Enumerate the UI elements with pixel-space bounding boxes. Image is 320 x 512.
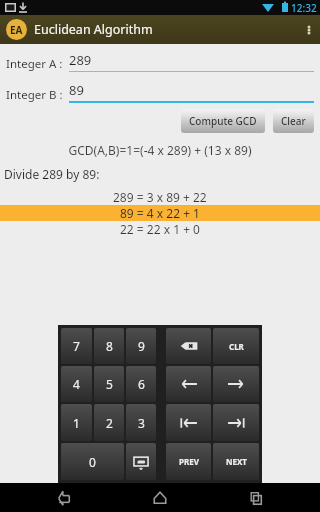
staticText: 289 = 3 x 89 + 22 bbox=[113, 189, 207, 205]
staticText: 89 bbox=[69, 81, 84, 99]
staticText: NEXT bbox=[226, 456, 247, 467]
button[interactable]: 8 bbox=[94, 328, 124, 364]
button[interactable]: More options bbox=[298, 15, 320, 44]
button[interactable]: 289 bbox=[69, 51, 314, 72]
button[interactable]: 2 bbox=[94, 404, 124, 441]
button[interactable]: Move left bbox=[166, 366, 211, 402]
button[interactable]: 3 bbox=[126, 404, 156, 441]
staticText: Divide 289 by 89: bbox=[4, 166, 100, 182]
staticText: 12:32 bbox=[291, 1, 317, 15]
button[interactable]: Move to end bbox=[213, 404, 259, 441]
button[interactable]: Back bbox=[32, 483, 96, 512]
staticText: GCD(A,B)=1=(-4 x 289) + (13 x 89) bbox=[0, 142, 320, 158]
staticText: Compute GCD bbox=[189, 114, 257, 128]
staticText: 289 bbox=[69, 51, 92, 69]
button[interactable]: PREV bbox=[166, 443, 211, 480]
staticText: 89 = 4 x 22 + 1 bbox=[120, 205, 200, 221]
staticText: 6 bbox=[138, 376, 145, 392]
staticText: 7 bbox=[73, 338, 80, 354]
button[interactable]: 1 bbox=[61, 404, 92, 441]
button[interactable]: 6 bbox=[126, 366, 156, 402]
button[interactable]: Backspace bbox=[166, 328, 211, 364]
staticText: CLR bbox=[229, 341, 244, 352]
staticText: 22 = 22 x 1 + 0 bbox=[120, 221, 200, 237]
staticText: 3 bbox=[138, 415, 145, 431]
staticText: Integer B : bbox=[6, 87, 63, 103]
button[interactable]: 7 bbox=[61, 328, 92, 364]
button[interactable]: 4 bbox=[61, 366, 92, 402]
staticText: Clear bbox=[281, 114, 306, 128]
button[interactable]: Compute GCD bbox=[181, 109, 265, 133]
staticText: EA bbox=[10, 23, 23, 37]
staticText: 0 bbox=[89, 454, 96, 470]
button[interactable]: Home bbox=[128, 483, 192, 512]
button[interactable]: 0 bbox=[61, 443, 124, 480]
button[interactable]: CLR bbox=[213, 328, 259, 364]
button[interactable]: 9 bbox=[126, 328, 156, 364]
button[interactable]: Move to start bbox=[166, 404, 211, 441]
button[interactable]: Switch keyboard bbox=[126, 443, 156, 480]
button[interactable]: Recents bbox=[224, 483, 288, 512]
staticText: Integer A : bbox=[6, 56, 63, 72]
button[interactable]: Move right bbox=[213, 366, 259, 402]
staticText: 9 bbox=[138, 338, 145, 354]
button[interactable]: 5 bbox=[94, 366, 124, 402]
staticText: 8 bbox=[106, 338, 113, 354]
staticText: 4 bbox=[73, 376, 80, 392]
button[interactable]: NEXT bbox=[213, 443, 259, 480]
button[interactable]: 89 bbox=[69, 81, 314, 103]
staticText: Euclidean Algorithm bbox=[34, 21, 153, 38]
staticText: 1 bbox=[73, 415, 80, 431]
staticText: 5 bbox=[106, 376, 113, 392]
staticText: PREV bbox=[179, 456, 199, 467]
button[interactable]: Clear bbox=[273, 109, 314, 133]
staticText: 2 bbox=[106, 415, 113, 431]
